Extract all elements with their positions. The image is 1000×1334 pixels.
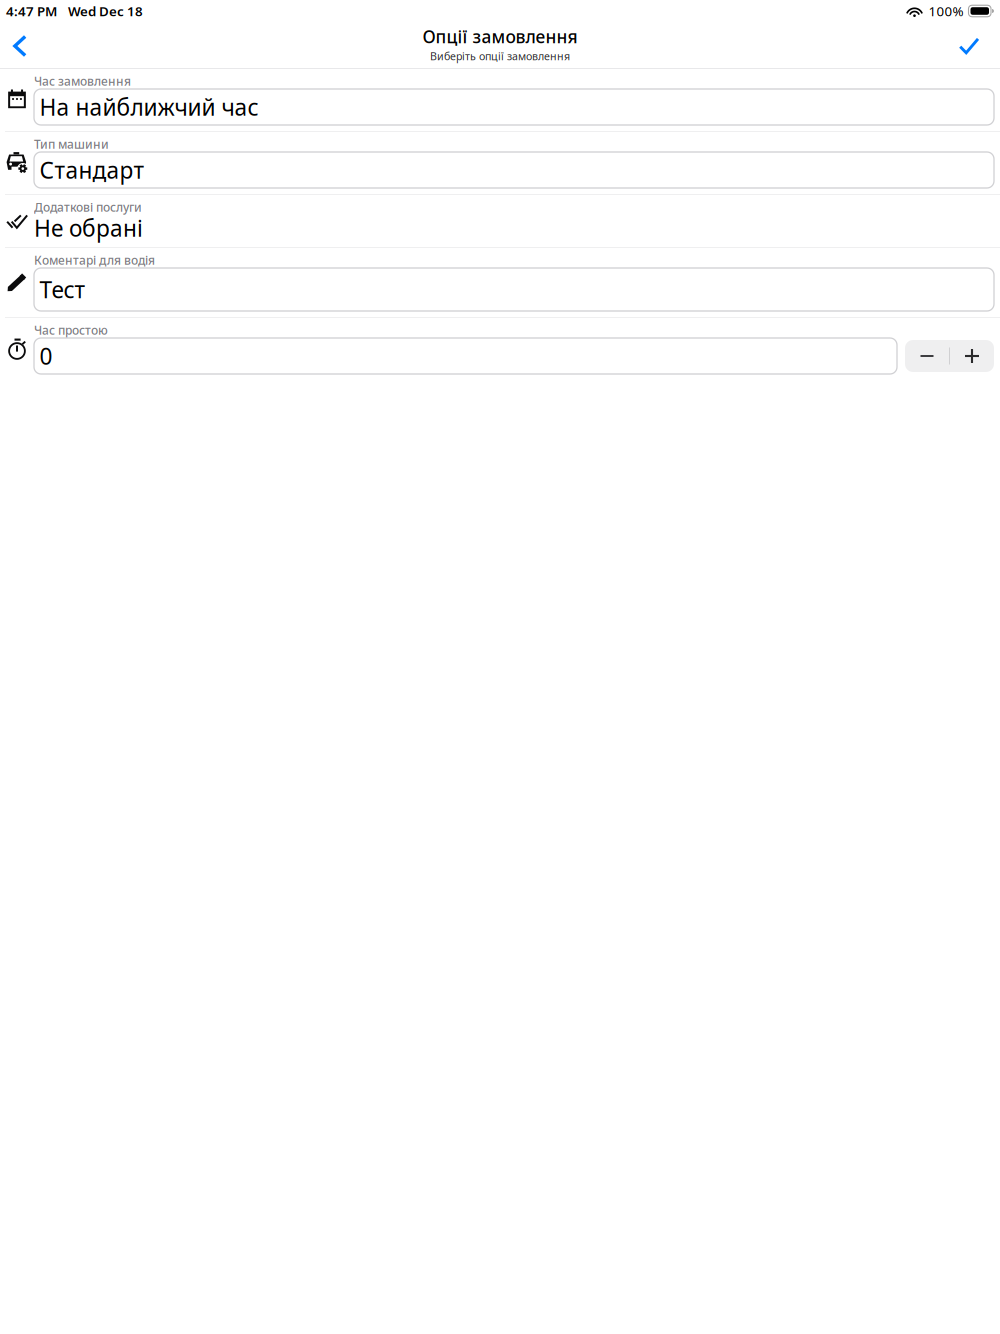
- staticText: Тип машини: [34, 136, 109, 152]
- button[interactable]: Done: [949, 26, 989, 66]
- button[interactable]: Increase idle time: [950, 340, 994, 372]
- staticText: Не обрані: [34, 213, 143, 243]
- staticText: Виберіть опції замовлення: [430, 49, 570, 63]
- staticText: 100%: [928, 2, 963, 20]
- button[interactable]: Тип машини: [0, 132, 1000, 194]
- staticText: Стандарт: [39, 155, 144, 185]
- staticText: Час замовлення: [34, 73, 131, 89]
- staticText: Час простою: [34, 322, 108, 338]
- staticText: Додаткові послуги: [34, 199, 142, 215]
- staticText: 4:47 PM: [6, 2, 57, 20]
- button[interactable]: 0: [34, 338, 897, 374]
- staticText: Опції замовлення: [422, 25, 577, 48]
- button[interactable]: Час замовлення: [0, 69, 1000, 131]
- staticText: 0: [39, 341, 52, 371]
- staticText: На найближчий час: [39, 92, 258, 122]
- button[interactable]: Додаткові послуги: [0, 195, 1000, 247]
- staticText: Тест: [39, 274, 85, 304]
- button[interactable]: Back: [0, 26, 40, 66]
- button[interactable]: Коментарі для водія: [0, 248, 1000, 317]
- staticText: Коментарі для водія: [34, 252, 155, 268]
- staticText: Wed Dec 18: [68, 2, 143, 20]
- button[interactable]: Decrease idle time: [905, 340, 949, 372]
